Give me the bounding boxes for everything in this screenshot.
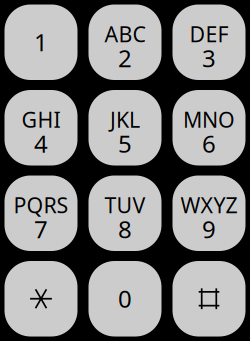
staticText: GHI [21,105,60,134]
staticText: ABC [104,20,145,48]
button[interactable]: 0 [88,261,161,336]
button[interactable]: 9 [172,175,245,251]
button[interactable]: 6 [172,90,245,165]
button[interactable]: 4 [4,90,77,165]
staticText: 2 [118,42,132,74]
staticText: MNO [183,105,235,134]
staticText: 1 [34,26,48,58]
button[interactable]: 3 [172,4,245,80]
staticText: JKL [110,105,140,134]
staticText: 3 [202,42,216,74]
button[interactable]: Star [4,261,77,336]
staticText: 9 [202,213,216,245]
staticText: WXYZ [180,191,237,219]
staticText: PQRS [13,191,68,219]
staticText: TUV [104,191,145,219]
staticText: 0 [118,282,132,314]
button[interactable]: 5 [88,90,161,165]
staticText: 4 [34,128,48,159]
button[interactable]: Pound [172,261,245,336]
staticText: DEF [189,20,228,48]
staticText: 8 [118,213,132,245]
staticText: 5 [118,128,132,159]
staticText: 7 [34,213,48,245]
staticText: 6 [202,128,216,159]
button[interactable]: 7 [4,175,77,251]
button[interactable]: 8 [88,175,161,251]
button[interactable]: 2 [88,4,161,80]
button[interactable]: 1 [4,4,77,80]
